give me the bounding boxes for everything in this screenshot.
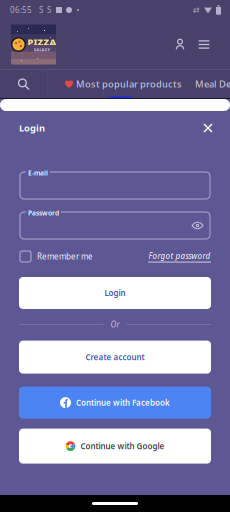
button[interactable]: Continue with Facebook [19, 387, 211, 419]
staticText: S [39, 5, 43, 15]
staticText: Or [110, 319, 119, 330]
staticText: Login [104, 288, 125, 298]
staticText: Meal Deal [195, 78, 230, 90]
staticText: Continue with Google [80, 441, 164, 451]
button[interactable]: Account [168, 27, 192, 61]
button[interactable]: Close [195, 115, 221, 141]
staticText: 06:55 [10, 5, 32, 15]
button[interactable]: Login [19, 277, 211, 309]
staticText: GALAXY [33, 47, 50, 52]
staticText: Password [28, 208, 59, 217]
staticText: ⇄ [193, 5, 200, 15]
button[interactable]: Create account [19, 341, 211, 374]
staticText: E-mail [28, 168, 48, 177]
staticText: PIZZA [27, 36, 56, 48]
staticText: S [47, 5, 51, 15]
staticText: Create account [85, 352, 144, 362]
button[interactable]: Search [0, 70, 47, 98]
button[interactable]: Menu [192, 27, 216, 61]
button[interactable]: Remember me [20, 251, 93, 262]
staticText: Forgot password [148, 251, 210, 261]
button[interactable]: Forgot password [148, 251, 211, 262]
button[interactable]: Meal Deal [195, 70, 230, 98]
staticText: Continue with Facebook [76, 397, 170, 408]
staticText: Most popular products [76, 78, 182, 90]
button[interactable]: Most popular products [65, 70, 188, 98]
button[interactable]: Continue with Google [19, 429, 211, 464]
staticText: Remember me [37, 251, 93, 262]
staticText: Login [19, 122, 45, 134]
